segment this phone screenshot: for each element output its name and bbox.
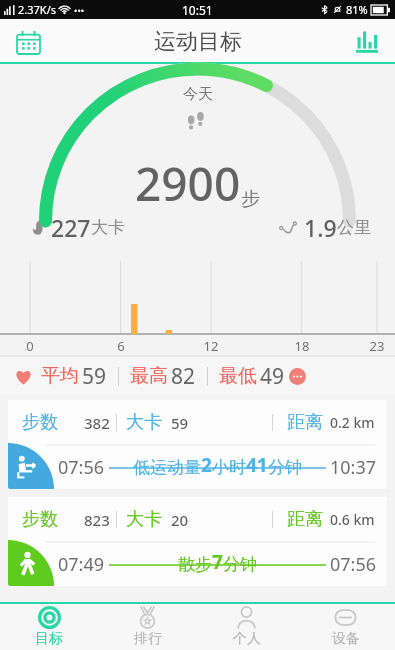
staticText: 公里: [337, 217, 371, 238]
staticText: 07:49: [58, 552, 105, 577]
staticText: 10:37: [330, 455, 377, 480]
staticText: 382: [84, 413, 110, 433]
staticText: 82: [171, 362, 196, 391]
staticText: 227: [51, 212, 91, 243]
staticText: 分钟: [223, 554, 257, 575]
staticText: 步数: [22, 508, 58, 531]
button[interactable]: 平均: [14, 357, 383, 395]
staticText: 大卡: [126, 508, 162, 531]
staticText: 平均: [41, 364, 79, 388]
staticText: 0.6 km: [330, 510, 375, 529]
staticText: 排行: [134, 630, 162, 648]
staticText: 07:56: [58, 455, 105, 480]
staticText: 0.2 km: [330, 413, 375, 432]
staticText: 49: [260, 362, 285, 391]
staticText: 低运动量: [133, 457, 201, 478]
staticText: 59: [82, 362, 107, 391]
staticText: 1.9: [304, 212, 337, 243]
staticText: 设备: [332, 630, 360, 648]
staticText: 步数: [22, 411, 58, 434]
staticText: 步: [241, 187, 260, 211]
staticText: 12: [199, 337, 223, 355]
staticText: •••: [74, 4, 85, 16]
staticText: 18: [290, 337, 314, 355]
button[interactable]: 步数: [8, 497, 387, 586]
staticText: 41: [246, 452, 268, 478]
staticText: 81%: [346, 2, 368, 17]
staticText: 散步: [178, 554, 212, 575]
staticText: 20: [171, 510, 189, 530]
staticText: 10:51: [182, 2, 213, 18]
staticText: 小时: [212, 457, 246, 478]
staticText: 大卡: [91, 217, 125, 238]
button[interactable]: More: [289, 368, 306, 385]
button[interactable]: 步数: [8, 400, 387, 489]
staticText: 59: [171, 413, 189, 433]
staticText: 个人: [233, 630, 261, 648]
staticText: 2.37K/s: [18, 2, 56, 17]
staticText: 分钟: [268, 457, 302, 478]
staticText: 距离: [287, 411, 323, 434]
staticText: 今天: [183, 85, 213, 104]
button[interactable]: 目标: [0, 604, 98, 650]
staticText: 大卡: [126, 411, 162, 434]
button[interactable]: 设备: [296, 604, 395, 650]
staticText: 23: [365, 337, 389, 355]
staticText: 7: [212, 549, 223, 575]
staticText: 运动目标: [154, 28, 242, 56]
staticText: 6: [109, 337, 133, 355]
staticText: 最低: [219, 364, 257, 388]
staticText: 2: [201, 452, 212, 478]
staticText: 最高: [130, 364, 168, 388]
staticText: 目标: [35, 630, 63, 648]
button[interactable]: 个人: [197, 604, 296, 650]
staticText: 0: [18, 337, 42, 355]
button[interactable]: Calendar: [10, 24, 46, 60]
button[interactable]: 排行: [98, 604, 197, 650]
button[interactable]: Statistics: [349, 24, 385, 60]
staticText: 距离: [287, 508, 323, 531]
staticText: 823: [84, 510, 110, 530]
staticText: 07:56: [330, 552, 377, 577]
staticText: 2900: [135, 152, 241, 215]
